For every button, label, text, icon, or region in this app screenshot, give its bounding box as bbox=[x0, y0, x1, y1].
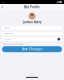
button[interactable]: Profile photo bbox=[28, 13, 35, 20]
staticText: Jordan Avery bbox=[23, 20, 41, 24]
staticText: 9:41 bbox=[2, 1, 5, 3]
button[interactable]: Full name bbox=[2, 26, 62, 30]
staticText: Edit Profile bbox=[24, 5, 40, 9]
staticText: Email address bbox=[4, 33, 14, 34]
staticText: Password bbox=[4, 38, 12, 40]
button[interactable]: Password bbox=[2, 37, 62, 41]
button[interactable]: Email address bbox=[2, 32, 62, 35]
button[interactable]: Save Changes bbox=[2, 46, 62, 52]
button[interactable]: Back bbox=[0, 4, 4, 10]
staticText: We never share your details. bbox=[3, 43, 23, 45]
staticText: Full name bbox=[4, 27, 10, 29]
staticText: Save Changes bbox=[22, 47, 42, 51]
